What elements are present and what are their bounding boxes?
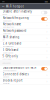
staticText: Off [3, 39, 5, 41]
staticText: 5 GHz only [3, 54, 18, 58]
button[interactable]: Wi-Fi sharing [0, 35, 50, 41]
button[interactable]: Network frequency [0, 16, 50, 22]
staticText: Block & report [3, 79, 23, 82]
button[interactable]: Network password [0, 29, 50, 35]
staticText: Disable after inactivity [3, 10, 32, 13]
staticText: › [46, 43, 47, 46]
staticText: Network password [3, 29, 27, 32]
staticText: ← [2, 5, 4, 8]
staticText: Less range [3, 58, 12, 60]
button[interactable]: Block & report [0, 78, 50, 85]
staticText: › [46, 73, 47, 77]
button[interactable]: Disable after inactivity [0, 9, 50, 16]
staticText: 2.4 GHz band [3, 42, 22, 45]
staticText: ADVANCED [3, 62, 11, 64]
staticText: Network name [3, 22, 22, 26]
staticText: › [46, 36, 47, 40]
staticText: › [46, 24, 47, 27]
staticText: › [46, 56, 47, 59]
staticText: › [46, 80, 47, 83]
button[interactable]: Data transmission on Wi-Fi [0, 66, 50, 72]
staticText: Faster speeds [3, 52, 14, 54]
staticText: › [46, 30, 47, 33]
staticText: Never [3, 14, 8, 15]
staticText: 9:41 [2, 1, 5, 3]
staticText: Recommended [3, 46, 14, 47]
staticText: 5 GHz band [3, 48, 19, 52]
staticText: Wi-Fi hotspot [6, 5, 24, 8]
staticText: ▪ ▪ ▪ [45, 1, 48, 2]
button[interactable]: Back [2, 5, 4, 8]
staticText: Connected devices [3, 72, 29, 76]
button[interactable]: Network name [0, 22, 50, 29]
button[interactable]: 5 GHz band [0, 48, 50, 54]
staticText: › [46, 49, 47, 53]
staticText: Network frequency [3, 16, 29, 20]
staticText: 2 devices [3, 76, 10, 78]
staticText: AndroidAP7391 [3, 26, 15, 28]
staticText: Tap to show [3, 33, 11, 35]
staticText: Keep hotspot awake [3, 70, 17, 72]
button[interactable]: Connected devices [0, 72, 50, 78]
staticText: Wi-Fi sharing [3, 35, 20, 39]
staticText: Spam calls [3, 83, 10, 84]
staticText: Data transmission on Wi-Fi [3, 66, 37, 69]
button[interactable]: 5 GHz only [0, 54, 50, 61]
button[interactable]: 2.4 GHz band [0, 41, 50, 48]
staticText: 2.4 GHz band [3, 20, 12, 22]
